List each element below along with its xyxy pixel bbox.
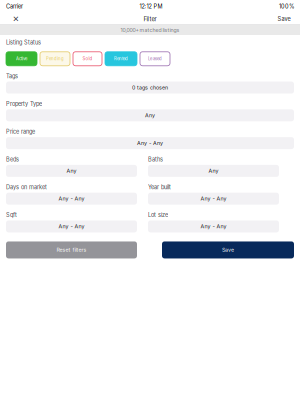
staticText: Save bbox=[222, 247, 234, 253]
staticText: 12:12 PM bbox=[139, 3, 162, 10]
staticText: Sqft bbox=[6, 212, 17, 218]
staticText: Any bbox=[66, 168, 76, 174]
staticText: Any - Any bbox=[200, 223, 226, 230]
button[interactable]: 0 tags chosen bbox=[6, 82, 294, 94]
button[interactable]: Any - Any bbox=[6, 220, 137, 232]
staticText: Reset filters bbox=[56, 247, 86, 253]
button[interactable]: Any bbox=[6, 165, 137, 177]
staticText: Sold bbox=[82, 56, 92, 61]
button[interactable]: Active bbox=[6, 52, 37, 66]
staticText: Rented bbox=[114, 56, 128, 61]
staticText: Active bbox=[16, 56, 27, 61]
staticText: Days on market bbox=[6, 184, 47, 191]
button[interactable]: Any bbox=[148, 165, 279, 177]
staticText: Any - Any bbox=[58, 223, 84, 230]
staticText: Any - Any bbox=[137, 140, 163, 146]
button[interactable]: Rented bbox=[105, 52, 137, 66]
button[interactable]: Reset filters bbox=[6, 241, 137, 258]
staticText: Save bbox=[277, 16, 290, 22]
button[interactable]: Pending bbox=[40, 52, 70, 66]
button[interactable]: Any - Any bbox=[148, 193, 279, 205]
button[interactable]: Any - Any bbox=[6, 193, 137, 205]
staticText: Carrier bbox=[6, 3, 23, 10]
staticText: Beds bbox=[6, 156, 19, 163]
staticText: Any bbox=[145, 112, 155, 119]
staticText: Baths bbox=[148, 156, 163, 163]
staticText: 0 tags chosen bbox=[132, 84, 168, 91]
staticText: 10,000+ matched listings bbox=[120, 27, 179, 33]
button[interactable]: Any - Any bbox=[6, 137, 294, 149]
staticText: Price range bbox=[6, 128, 35, 135]
button[interactable]: Save bbox=[273, 13, 295, 25]
staticText: Any - Any bbox=[200, 195, 226, 202]
staticText: Leased bbox=[148, 56, 162, 61]
staticText: Lot size bbox=[148, 212, 168, 218]
staticText: Listing Status bbox=[6, 39, 41, 46]
staticText: 100% bbox=[279, 3, 294, 10]
staticText: Tags bbox=[6, 73, 18, 80]
staticText: Pending bbox=[46, 56, 64, 61]
staticText: Any bbox=[208, 168, 218, 174]
staticText: Property Type bbox=[6, 101, 42, 107]
staticText: ✕ bbox=[12, 14, 19, 24]
button[interactable]: Leased bbox=[140, 52, 170, 66]
staticText: Year built bbox=[148, 184, 171, 191]
staticText: Any - Any bbox=[58, 195, 84, 202]
staticText: Filter bbox=[143, 15, 156, 23]
button[interactable]: Close bbox=[5, 13, 27, 25]
button[interactable]: Any bbox=[6, 109, 294, 121]
button[interactable]: Sold bbox=[73, 52, 102, 66]
button[interactable]: Save bbox=[162, 241, 294, 258]
button[interactable]: Any - Any bbox=[148, 220, 279, 232]
